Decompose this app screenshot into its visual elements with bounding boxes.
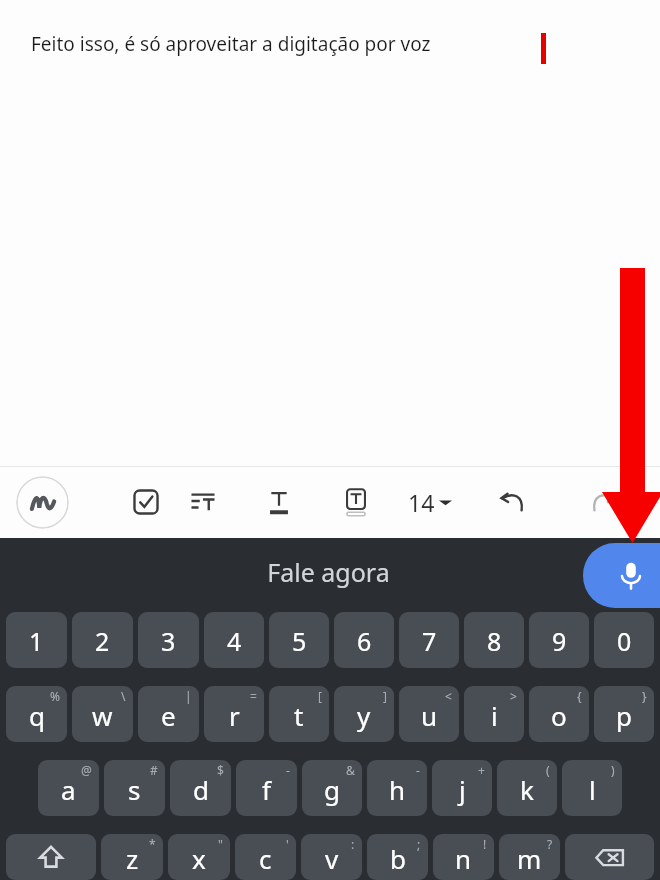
staticText: =	[250, 688, 257, 704]
button[interactable]: i	[464, 686, 524, 742]
button[interactable]: l	[562, 760, 622, 816]
staticText: :	[351, 836, 355, 852]
staticText: 14	[408, 487, 435, 518]
staticText: $	[217, 762, 224, 778]
staticText: s	[128, 772, 141, 807]
button[interactable]: 7	[399, 612, 459, 668]
staticText: u	[421, 698, 438, 733]
button[interactable]: b	[367, 834, 428, 880]
staticText: 2	[95, 624, 110, 658]
staticText: &	[346, 762, 355, 778]
button[interactable]: k	[497, 760, 557, 816]
staticText: q	[29, 698, 45, 733]
button[interactable]: e	[138, 686, 199, 742]
button[interactable]: Undo	[492, 482, 532, 522]
button[interactable]: o	[529, 686, 589, 742]
staticText: w	[92, 698, 113, 733]
staticText: {	[577, 688, 582, 704]
button[interactable]: 6	[334, 612, 394, 668]
button[interactable]: t	[269, 686, 329, 742]
button[interactable]: v	[301, 834, 362, 880]
staticText: i	[491, 698, 498, 733]
staticText: g	[324, 772, 340, 807]
staticText: y	[357, 698, 371, 733]
button[interactable]: Paragraph style	[183, 482, 223, 522]
staticText: >	[510, 688, 517, 704]
button[interactable]: m	[499, 834, 560, 880]
button[interactable]: c	[235, 834, 296, 880]
staticText: |	[185, 688, 192, 704]
button[interactable]: s	[104, 760, 165, 816]
button[interactable]: 8	[464, 612, 524, 668]
staticText: z	[126, 841, 139, 876]
staticText: @	[81, 762, 92, 778]
staticText: v	[325, 841, 339, 876]
button[interactable]: n	[433, 834, 494, 880]
staticText: 8	[487, 624, 502, 658]
staticText: }	[642, 688, 647, 704]
staticText: r	[229, 698, 240, 733]
staticText: ;	[417, 836, 421, 852]
staticText: Feito isso, é só aproveitar a digitação …	[31, 31, 431, 57]
button[interactable]: 0	[594, 612, 654, 668]
button[interactable]: 3	[138, 612, 199, 668]
staticText: !	[483, 836, 487, 852]
button[interactable]: Microphone	[583, 543, 660, 608]
staticText: l	[589, 772, 596, 807]
button[interactable]: z	[101, 834, 163, 880]
staticText: 4	[227, 624, 242, 658]
staticText: \	[121, 688, 126, 704]
staticText: f	[262, 772, 271, 807]
button[interactable]: w	[72, 686, 133, 742]
staticText: 3	[161, 624, 176, 658]
staticText: e	[161, 698, 176, 733]
staticText: "	[218, 836, 223, 852]
button[interactable]: p	[594, 686, 654, 742]
button[interactable]: a	[38, 760, 99, 816]
button[interactable]: Text box	[336, 482, 376, 522]
staticText: 1	[29, 624, 44, 658]
button[interactable]: f	[236, 760, 297, 816]
button[interactable]: y	[334, 686, 394, 742]
staticText: '	[286, 836, 289, 852]
button[interactable]: g	[302, 760, 362, 816]
button[interactable]: Shift	[6, 834, 96, 880]
button[interactable]: d	[170, 760, 231, 816]
staticText: 0	[617, 624, 632, 658]
button[interactable]: Redo	[584, 482, 624, 522]
staticText: o	[551, 698, 567, 733]
staticText: j	[459, 772, 466, 807]
button[interactable]: Backspace	[565, 834, 654, 880]
staticText: c	[259, 841, 272, 876]
staticText: x	[192, 841, 206, 876]
button[interactable]: 4	[204, 612, 264, 668]
button[interactable]: h	[367, 760, 427, 816]
button[interactable]: 2	[72, 612, 133, 668]
button[interactable]: 9	[529, 612, 589, 668]
staticText: k	[520, 772, 534, 807]
staticText: *	[149, 836, 156, 852]
staticText: +	[478, 762, 485, 778]
button[interactable]: 5	[269, 612, 329, 668]
staticText: m	[517, 841, 542, 876]
button[interactable]: Checklist	[126, 482, 166, 522]
button[interactable]: 1	[6, 612, 67, 668]
staticText: 5	[292, 624, 307, 658]
staticText: -	[416, 762, 420, 778]
staticText: t	[294, 698, 304, 733]
button[interactable]: Text format	[259, 482, 299, 522]
staticText: d	[193, 772, 209, 807]
button[interactable]: j	[432, 760, 492, 816]
staticText: (	[546, 762, 550, 778]
button[interactable]: q	[6, 686, 67, 742]
button[interactable]: r	[204, 686, 264, 742]
staticText: 7	[422, 624, 437, 658]
staticText: b	[390, 841, 406, 876]
button[interactable]: Handwriting	[16, 476, 69, 529]
button[interactable]: 14	[404, 481, 456, 523]
staticText: Fale agora	[267, 555, 390, 589]
button[interactable]: u	[399, 686, 459, 742]
staticText: )	[611, 762, 615, 778]
button[interactable]: x	[168, 834, 230, 880]
staticText: -	[286, 762, 290, 778]
